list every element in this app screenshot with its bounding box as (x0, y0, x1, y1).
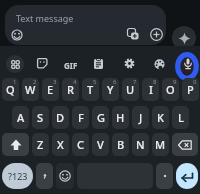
button[interactable]: L (172, 106, 189, 129)
staticText: P (187, 82, 194, 97)
staticText: A (17, 110, 25, 125)
staticText: E (47, 82, 54, 97)
button[interactable]: F (72, 106, 89, 129)
staticText: H (116, 110, 125, 125)
staticText: I (149, 82, 153, 97)
button[interactable] (37, 58, 48, 69)
staticText: B (117, 137, 125, 152)
staticText: W (25, 82, 36, 97)
button[interactable] (124, 58, 135, 69)
button[interactable]: Q (2, 78, 19, 101)
staticText: K (157, 110, 164, 125)
button[interactable] (2, 133, 29, 156)
staticText: Q (6, 82, 15, 97)
staticText: Z (37, 137, 44, 152)
button[interactable]: O (162, 78, 179, 101)
button[interactable]: Y (102, 78, 119, 101)
staticText: F (78, 110, 84, 125)
staticText: V (97, 137, 104, 152)
button[interactable] (36, 163, 53, 189)
staticText: 4 (73, 78, 77, 86)
staticText: N (136, 137, 145, 152)
staticText: Text message (16, 12, 74, 24)
button[interactable]: ?123 (2, 163, 33, 189)
button[interactable]: D (52, 106, 69, 129)
button[interactable]: X (52, 133, 69, 156)
button[interactable] (6, 55, 24, 73)
button[interactable]: G (92, 106, 109, 129)
button[interactable] (182, 58, 194, 70)
staticText: D (56, 110, 65, 125)
staticText: 6 (113, 78, 117, 86)
button[interactable] (172, 26, 196, 50)
button[interactable]: W (22, 78, 39, 101)
staticText: R (67, 82, 74, 97)
staticText: T (87, 82, 94, 97)
button[interactable]: N (132, 133, 149, 156)
staticText: O (166, 82, 175, 97)
button[interactable]: T (82, 78, 99, 101)
button[interactable] (93, 58, 104, 69)
button[interactable]: P (182, 78, 199, 101)
button[interactable]: Text message (5, 5, 166, 45)
button[interactable]: V (92, 133, 109, 156)
button[interactable]: C (72, 133, 89, 156)
button[interactable]: B (112, 133, 129, 156)
button[interactable] (176, 163, 198, 189)
staticText: J (139, 110, 143, 125)
staticText: ?123 (8, 170, 28, 182)
button[interactable] (56, 163, 74, 189)
button[interactable]: A (12, 106, 29, 129)
button[interactable] (156, 163, 173, 189)
button[interactable]: U (122, 78, 139, 101)
button[interactable]: J (132, 106, 149, 129)
staticText: 7 (133, 78, 137, 86)
staticText: Y (107, 82, 114, 97)
button[interactable]: R (62, 78, 79, 101)
staticText: 2 (33, 78, 37, 86)
staticText: 0 (193, 78, 197, 86)
button[interactable]: H (112, 106, 129, 129)
button[interactable]: E (42, 78, 59, 101)
button[interactable]: M (152, 133, 169, 156)
staticText: 1 (13, 78, 17, 86)
staticText: 8 (153, 78, 157, 86)
staticText: M (155, 137, 166, 152)
staticText: C (77, 137, 84, 152)
staticText: 9 (173, 78, 177, 86)
staticText: U (126, 82, 135, 97)
staticText: G (97, 110, 105, 125)
button[interactable]: K (152, 106, 169, 129)
staticText: GIF (64, 60, 78, 71)
staticText: S (37, 110, 44, 125)
staticText: 5 (93, 78, 97, 86)
button[interactable] (172, 133, 198, 156)
staticText: L (178, 110, 184, 125)
button[interactable]: S (32, 106, 49, 129)
staticText: 3 (53, 78, 57, 86)
button[interactable] (154, 59, 165, 70)
button[interactable]: GIF (61, 57, 81, 73)
button[interactable]: I (142, 78, 159, 101)
button[interactable]: Z (32, 133, 49, 156)
staticText: X (57, 137, 64, 152)
